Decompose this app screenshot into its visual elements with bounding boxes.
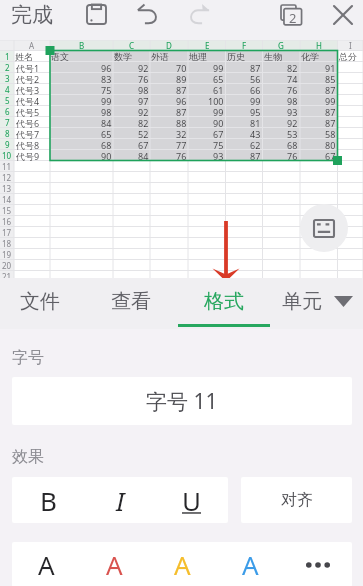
- button[interactable]: 格式: [178, 278, 270, 330]
- staticText: 76: [287, 84, 298, 95]
- staticText: 3: [5, 73, 10, 84]
- staticText: 18: [2, 238, 12, 249]
- staticText: 100: [208, 95, 224, 106]
- staticText: 生物: [264, 51, 282, 62]
- staticText: A: [29, 40, 35, 51]
- staticText: 75: [101, 84, 112, 95]
- staticText: H: [316, 40, 322, 51]
- staticText: 17: [2, 227, 12, 238]
- staticText: 32: [176, 128, 187, 139]
- staticText: 19: [2, 249, 12, 260]
- staticText: 77: [176, 139, 187, 150]
- staticText: 13: [2, 183, 12, 194]
- button[interactable]: Close: [326, 0, 360, 29]
- staticText: 1: [5, 51, 10, 62]
- button[interactable]: Redo: [182, 0, 216, 29]
- button[interactable]: 查看: [103, 278, 159, 330]
- button[interactable]: Text colour: [80, 542, 148, 586]
- button[interactable]: Keyboard: [300, 204, 348, 252]
- staticText: 68: [101, 139, 112, 150]
- button[interactable]: Sheets: [274, 0, 308, 29]
- button[interactable]: More tabs: [324, 278, 362, 330]
- staticText: 89: [176, 73, 187, 84]
- staticText: 字号: [12, 348, 44, 368]
- staticText: 99: [325, 95, 336, 106]
- staticText: 单元: [282, 289, 322, 314]
- staticText: I: [116, 483, 125, 518]
- staticText: 7: [5, 117, 10, 128]
- staticText: 74: [287, 73, 298, 84]
- staticText: 92: [138, 62, 149, 73]
- staticText: 2: [5, 62, 10, 73]
- staticText: 82: [287, 62, 298, 73]
- staticText: F: [242, 40, 247, 51]
- staticText: 姓名: [15, 51, 33, 62]
- staticText: 67: [138, 139, 149, 150]
- staticText: 地理: [189, 51, 207, 62]
- staticText: 6: [5, 106, 10, 117]
- staticText: 90: [101, 150, 112, 161]
- staticText: 98: [287, 95, 298, 106]
- button[interactable]: 对齐: [241, 477, 352, 523]
- staticText: 21: [2, 271, 12, 282]
- staticText: 53: [287, 128, 298, 139]
- staticText: 87: [176, 106, 187, 117]
- button[interactable]: I: [84, 477, 156, 523]
- button[interactable]: 字号 11: [12, 377, 352, 425]
- staticText: 70: [176, 62, 187, 73]
- staticText: 84: [101, 117, 112, 128]
- staticText: 65: [213, 73, 224, 84]
- staticText: 88: [176, 117, 187, 128]
- staticText: 代号3: [16, 84, 40, 95]
- button[interactable]: Text colour: [148, 542, 216, 586]
- button[interactable]: Text colour: [12, 542, 80, 586]
- staticText: 15: [2, 205, 12, 216]
- staticText: I: [349, 40, 352, 51]
- button[interactable]: 完成: [2, 0, 62, 29]
- staticText: 字号 11: [146, 387, 218, 416]
- staticText: 5: [5, 95, 10, 106]
- staticText: 82: [138, 117, 149, 128]
- staticText: 文件: [20, 289, 60, 314]
- staticText: 历史: [227, 51, 245, 62]
- staticText: 75: [213, 139, 224, 150]
- staticText: 65: [101, 128, 112, 139]
- staticText: B: [40, 483, 57, 518]
- staticText: 87: [250, 150, 261, 161]
- staticText: A: [38, 547, 55, 582]
- staticText: G: [278, 40, 284, 51]
- staticText: E: [205, 40, 210, 51]
- staticText: 87: [325, 84, 336, 95]
- button[interactable]: 文件: [12, 278, 68, 330]
- staticText: 52: [138, 128, 149, 139]
- button[interactable]: U: [156, 477, 228, 523]
- staticText: 76: [138, 73, 149, 84]
- button[interactable]: B: [12, 477, 84, 523]
- staticText: 87: [325, 117, 336, 128]
- staticText: 67: [213, 128, 224, 139]
- staticText: 93: [287, 106, 298, 117]
- staticText: A: [242, 547, 259, 582]
- staticText: 95: [250, 106, 261, 117]
- staticText: 效果: [12, 447, 44, 467]
- staticText: 92: [138, 106, 149, 117]
- staticText: 83: [101, 73, 112, 84]
- staticText: 85: [325, 73, 336, 84]
- staticText: 98: [138, 84, 149, 95]
- button[interactable]: Undo: [131, 0, 165, 29]
- staticText: 代号1: [16, 62, 40, 73]
- staticText: 格式: [204, 289, 244, 314]
- button[interactable]: More colours: [284, 542, 352, 586]
- staticText: 98: [101, 106, 112, 117]
- staticText: 10: [2, 150, 12, 161]
- button[interactable]: Text colour: [216, 542, 284, 586]
- staticText: 12: [2, 172, 12, 183]
- button[interactable]: Save: [79, 0, 113, 29]
- staticText: 代号2: [16, 73, 40, 84]
- button[interactable]: 单元: [282, 278, 322, 330]
- staticText: 99: [250, 95, 261, 106]
- staticText: 81: [250, 117, 261, 128]
- staticText: 87: [176, 84, 187, 95]
- staticText: 58: [325, 128, 336, 139]
- staticText: 91: [325, 62, 336, 73]
